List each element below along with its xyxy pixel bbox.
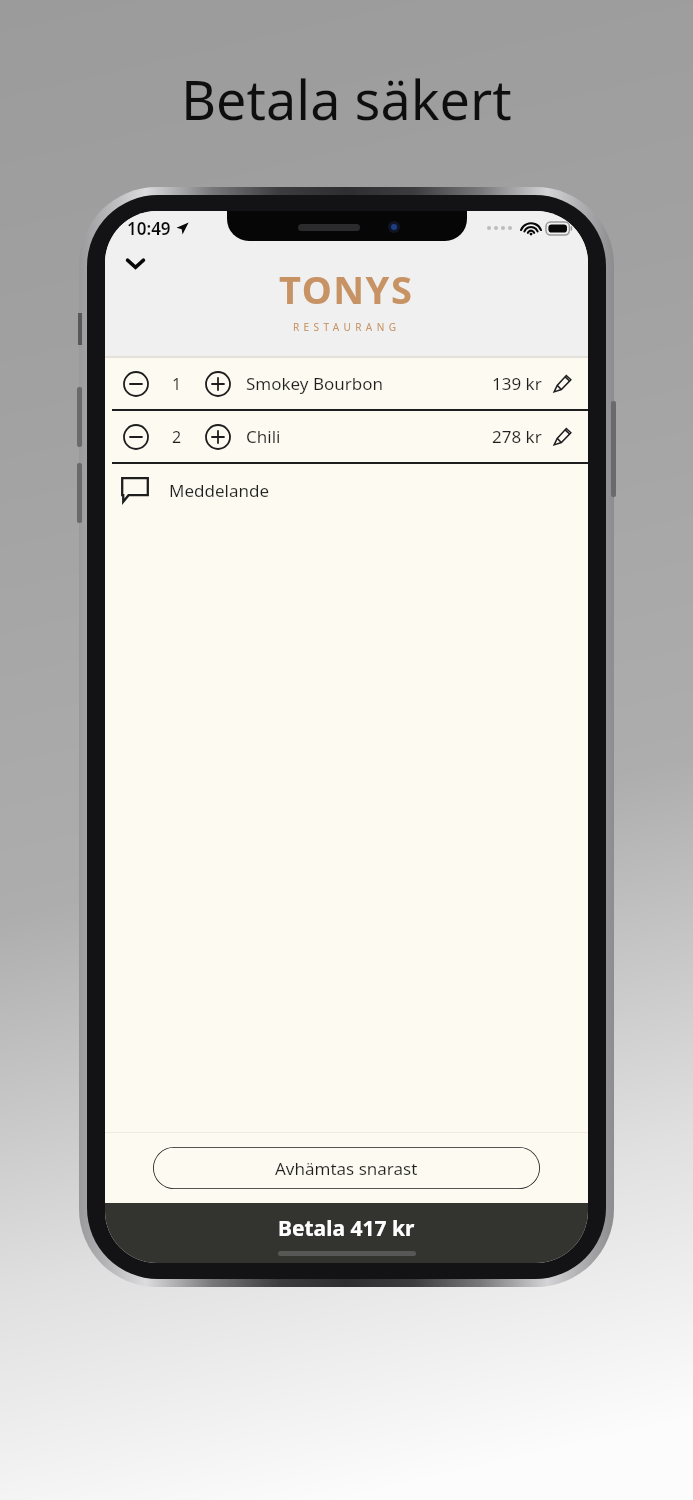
- staticText: 10:49: [127, 217, 171, 240]
- staticText: Betala 417 kr: [278, 1214, 415, 1243]
- button[interactable]: Betala 417 kr: [105, 1203, 588, 1263]
- button[interactable]: Close: [115, 243, 155, 283]
- staticText: 139 kr: [492, 372, 542, 395]
- button[interactable]: Increase quantity: [200, 366, 236, 402]
- staticText: Smokey Bourbon: [246, 372, 492, 395]
- staticText: Betala säkert: [181, 62, 512, 136]
- staticText: TONYS: [279, 263, 414, 315]
- staticText: Meddelande: [169, 479, 269, 502]
- button[interactable]: Edit item: [549, 370, 576, 397]
- staticText: RESTAURANG: [293, 320, 401, 334]
- staticText: 1: [172, 373, 182, 395]
- button[interactable]: Meddelande: [105, 464, 588, 516]
- button[interactable]: Edit item: [549, 423, 576, 450]
- staticText: Chili: [246, 425, 492, 448]
- button[interactable]: Decrease quantity: [118, 366, 154, 402]
- button[interactable]: Decrease quantity: [118, 419, 154, 455]
- staticText: 2: [172, 426, 182, 448]
- staticText: 278 kr: [492, 425, 542, 448]
- button[interactable]: Increase quantity: [200, 419, 236, 455]
- staticText: Avhämtas snarast: [275, 1157, 418, 1180]
- button[interactable]: Decrease quantity: [105, 411, 588, 462]
- button[interactable]: Avhämtas snarast: [153, 1147, 540, 1189]
- button[interactable]: Decrease quantity: [105, 358, 588, 409]
